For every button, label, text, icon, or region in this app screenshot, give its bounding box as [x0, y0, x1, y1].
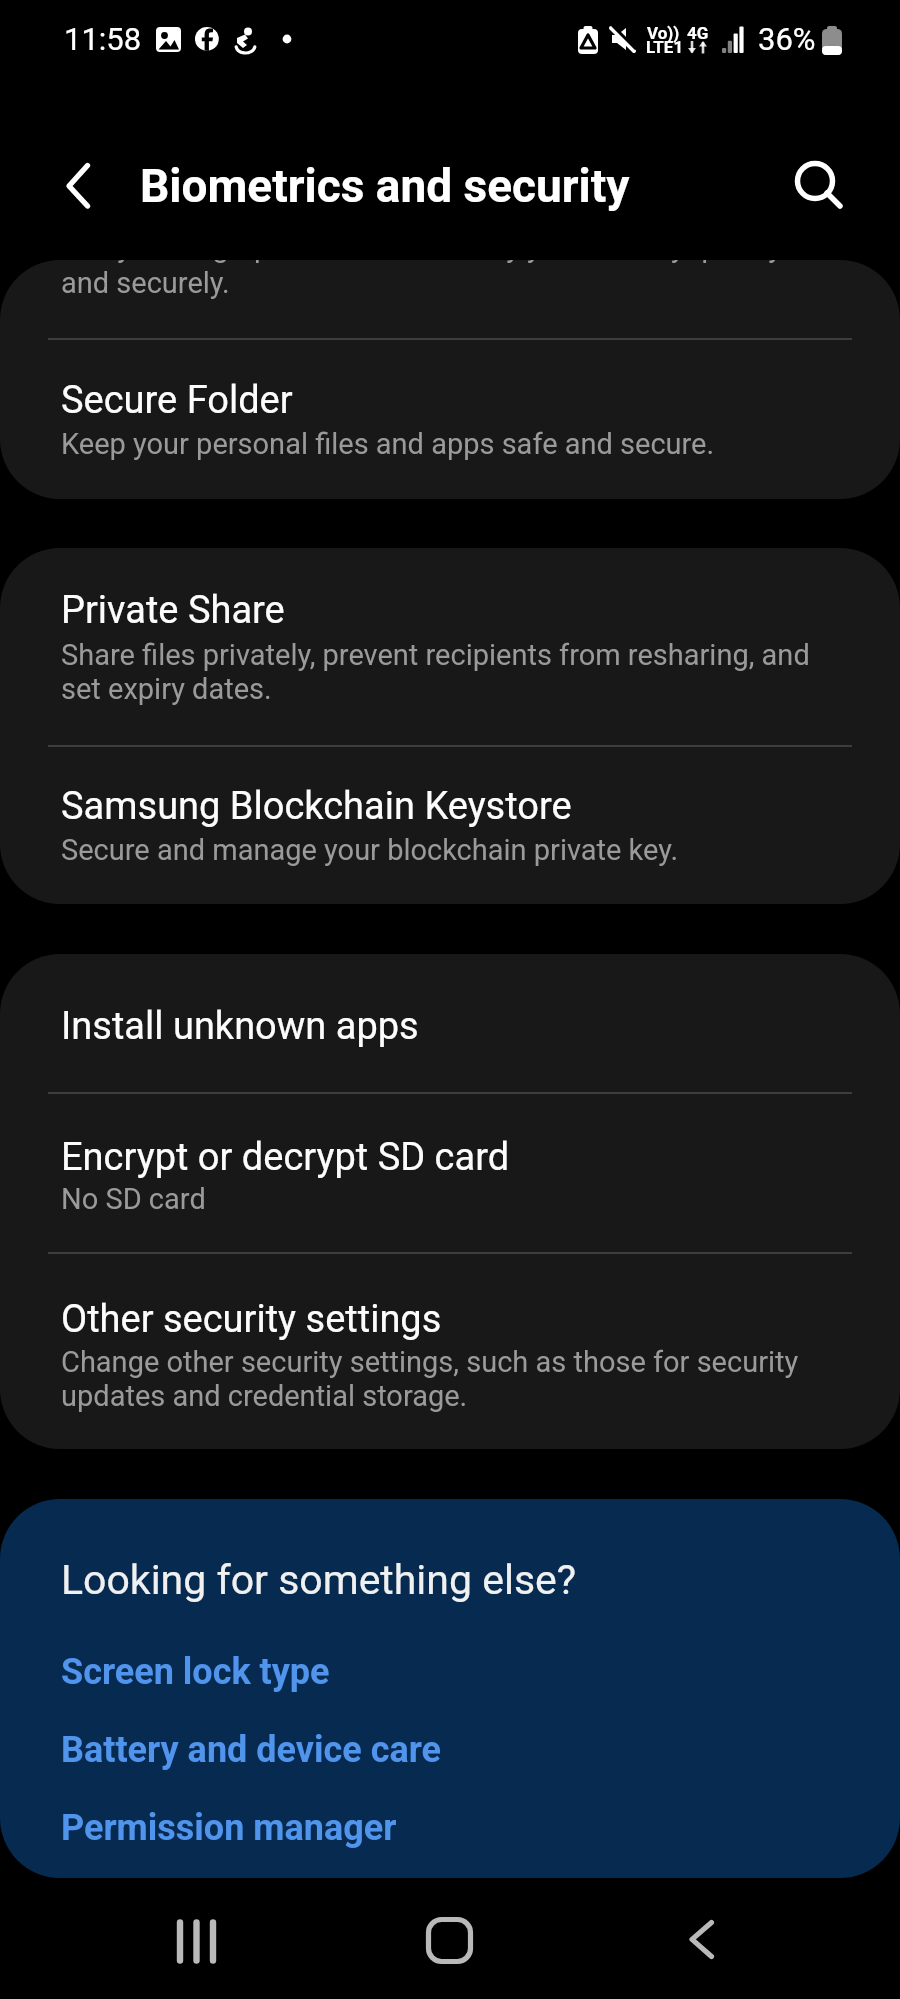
staticText: Install unknown apps — [61, 1004, 853, 1049]
button[interactable]: Use your fingerprint or face to verify y… — [0, 260, 900, 339]
staticText: Private Share — [61, 588, 853, 633]
button[interactable]: Private Share — [0, 548, 900, 745]
staticText: Secure Folder — [61, 378, 853, 423]
button[interactable]: Recent apps — [136, 1879, 256, 1999]
staticText: Battery and device care — [61, 1729, 441, 1771]
button[interactable]: Permission manager — [0, 1784, 900, 1862]
button[interactable]: Back — [640, 1879, 760, 1999]
staticText: No SD card — [61, 1182, 853, 1216]
button[interactable]: Install unknown apps — [0, 954, 900, 1093]
staticText: Permission manager — [61, 1807, 397, 1849]
staticText: and securely. — [61, 266, 853, 300]
staticText: Share files privately, prevent recipient… — [61, 638, 853, 706]
staticText: Other security settings — [61, 1297, 853, 1342]
staticText: 11:58 — [64, 21, 142, 57]
staticText: 4G — [687, 23, 709, 43]
staticText: Keep your personal files and apps safe a… — [61, 427, 853, 461]
staticText: Encrypt or decrypt SD card — [61, 1135, 853, 1180]
button[interactable]: Encrypt or decrypt SD card — [0, 1095, 900, 1253]
staticText: LTE1 — [646, 37, 684, 57]
button[interactable]: Battery and device care — [0, 1706, 900, 1784]
staticText: Change other security settings, such as … — [61, 1345, 853, 1413]
staticText: Looking for something else? — [61, 1556, 853, 1604]
button[interactable]: Home — [389, 1879, 509, 1999]
staticText: Biometrics and security — [140, 159, 630, 213]
staticText: Vo)) — [647, 23, 680, 43]
button[interactable]: Navigate up — [32, 140, 124, 232]
staticText: Use your fingerprint or face to verify y… — [61, 260, 853, 264]
staticText: Secure and manage your blockchain privat… — [61, 833, 853, 867]
staticText: 36% — [758, 21, 816, 57]
button[interactable]: Screen lock type — [0, 1628, 900, 1706]
button[interactable]: Other security settings — [0, 1255, 900, 1449]
staticText: Samsung Blockchain Keystore — [61, 784, 853, 829]
staticText: Screen lock type — [61, 1651, 330, 1693]
button[interactable]: Samsung Blockchain Keystore — [0, 747, 900, 904]
button[interactable]: Secure Folder — [0, 340, 900, 499]
button[interactable]: Search — [770, 140, 862, 232]
